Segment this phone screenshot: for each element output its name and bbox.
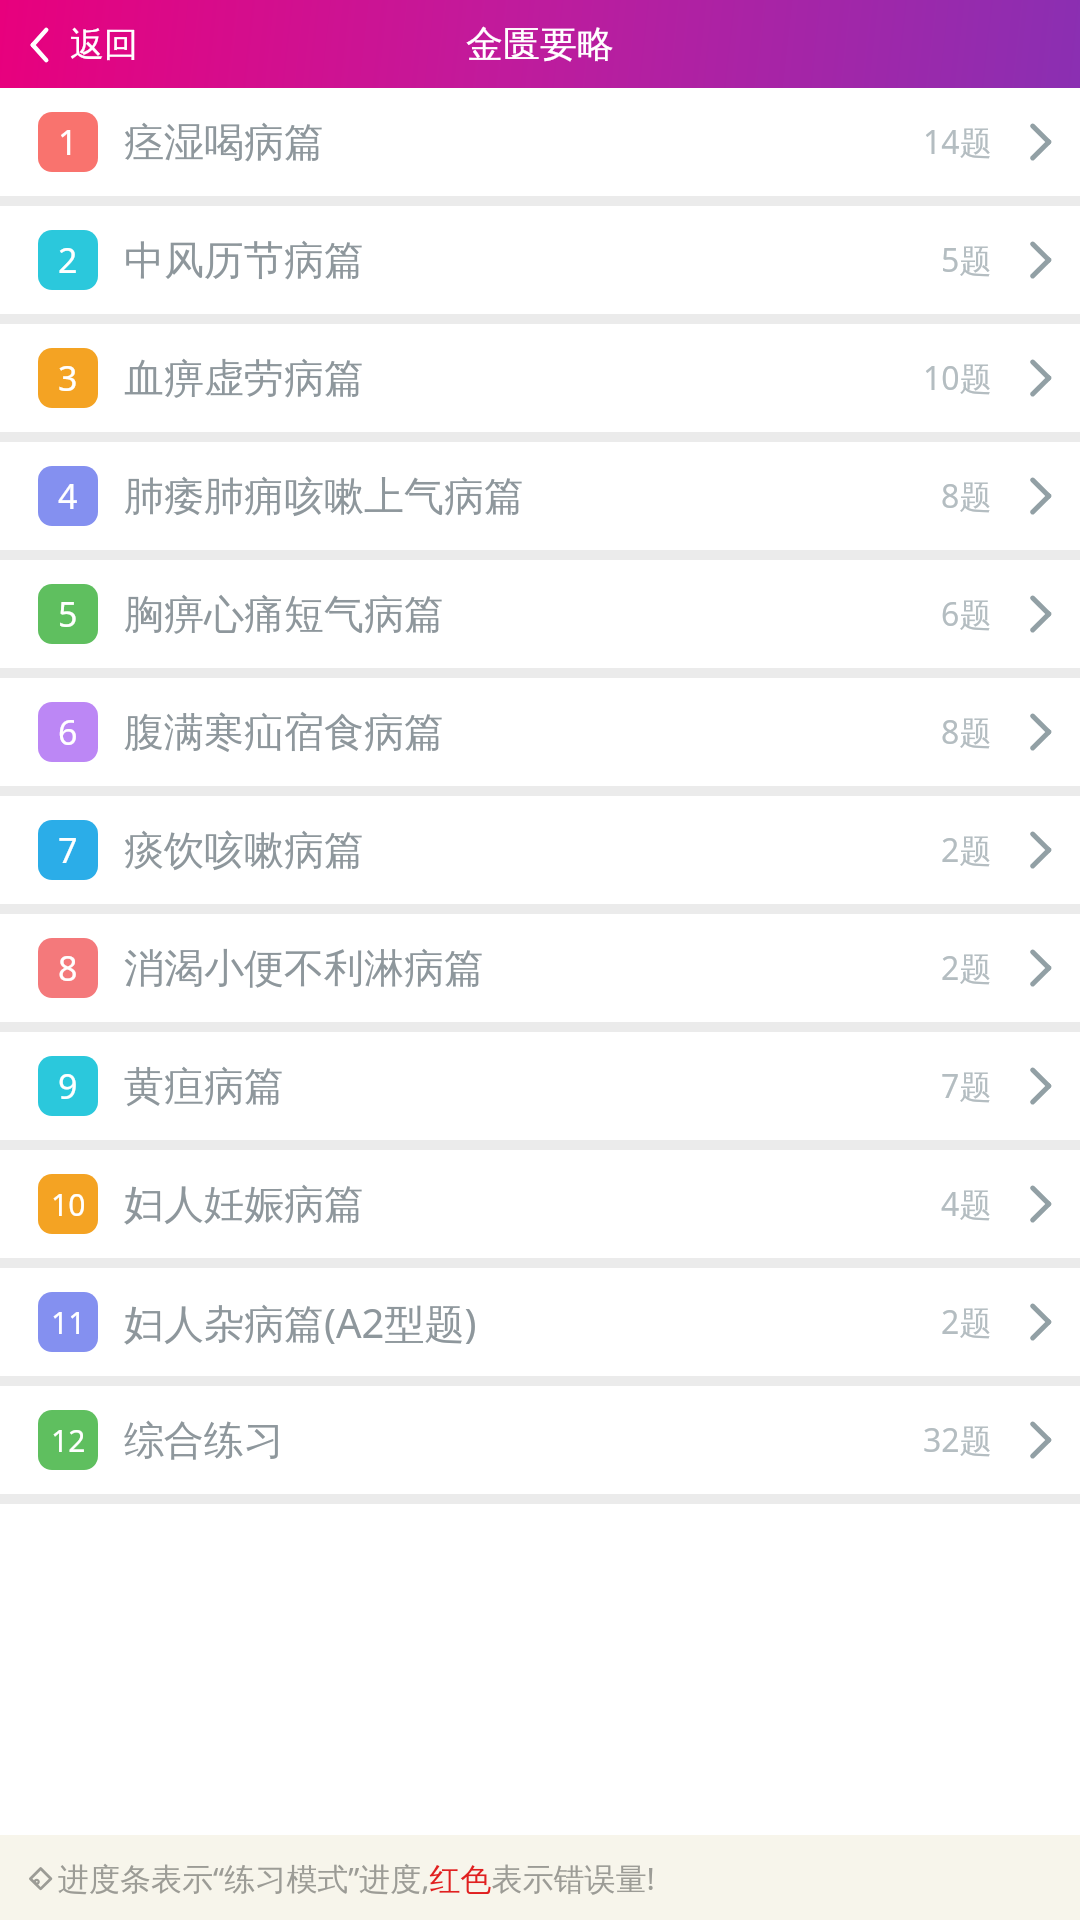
button[interactable]: 3: [0, 324, 1080, 432]
staticText: 14题: [923, 120, 992, 164]
staticText: 6: [58, 709, 78, 755]
staticText: 进度条表示“练习模式”进度,红色表示错误量!: [58, 1857, 655, 1899]
button[interactable]: 8: [0, 914, 1080, 1022]
other: 打开 肺痿肺痈咳嗽上气病篇: [1028, 475, 1054, 517]
staticText: 8题: [941, 710, 992, 754]
staticText: 12: [51, 1420, 86, 1461]
button[interactable]: 5: [0, 560, 1080, 668]
staticText: 8: [58, 945, 78, 991]
other: 打开 黄疸病篇: [1028, 1065, 1054, 1107]
other: 打开 综合练习: [1028, 1419, 1054, 1461]
staticText: 11: [51, 1302, 86, 1343]
staticText: 血痹虚劳病篇: [124, 353, 923, 403]
button[interactable]: 1: [0, 88, 1080, 196]
staticText: 7题: [941, 1064, 992, 1108]
button[interactable]: 2: [0, 206, 1080, 314]
staticText: 6题: [941, 592, 992, 636]
other: 打开 妇人妊娠病篇: [1028, 1183, 1054, 1225]
staticText: 肺痿肺痈咳嗽上气病篇: [124, 471, 941, 521]
staticText: 黄疸病篇: [124, 1061, 941, 1111]
staticText: 32题: [923, 1418, 992, 1462]
staticText: 5题: [941, 238, 992, 282]
staticText: 8题: [941, 474, 992, 518]
staticText: 1: [58, 119, 78, 165]
staticText: 痰饮咳嗽病篇: [124, 825, 941, 875]
other: 打开 痉湿喝病篇: [1028, 121, 1054, 163]
other: 打开 痰饮咳嗽病篇: [1028, 829, 1054, 871]
other: 打开 中风历节病篇: [1028, 239, 1054, 281]
staticText: 10: [51, 1184, 86, 1225]
staticText: 7: [58, 827, 78, 873]
staticText: 妇人杂病篇(A2型题): [124, 1295, 941, 1350]
button[interactable]: 7: [0, 796, 1080, 904]
button[interactable]: 10: [0, 1150, 1080, 1258]
other: 打开 血痹虚劳病篇: [1028, 357, 1054, 399]
staticText: 2题: [941, 1300, 992, 1344]
button[interactable]: 12: [0, 1386, 1080, 1494]
staticText: 消渴小便不利淋病篇: [124, 943, 941, 993]
other: 打开 消渴小便不利淋病篇: [1028, 947, 1054, 989]
button[interactable]: 6: [0, 678, 1080, 786]
staticText: 4题: [941, 1182, 992, 1226]
staticText: 3: [58, 355, 78, 401]
staticText: 2题: [941, 946, 992, 990]
staticText: 中风历节病篇: [124, 235, 941, 285]
staticText: 妇人妊娠病篇: [124, 1179, 941, 1229]
staticText: 胸痹心痛短气病篇: [124, 589, 941, 639]
other: 打开 胸痹心痛短气病篇: [1028, 593, 1054, 635]
staticText: 痉湿喝病篇: [124, 117, 923, 167]
staticText: 10题: [923, 356, 992, 400]
staticText: 金匮要略: [466, 21, 614, 68]
other: 打开 妇人杂病篇(A2型题): [1028, 1301, 1054, 1343]
button[interactable]: 11: [0, 1268, 1080, 1376]
staticText: 9: [58, 1063, 78, 1109]
staticText: 腹满寒疝宿食病篇: [124, 707, 941, 757]
staticText: 4: [58, 473, 78, 519]
staticText: 2: [58, 237, 78, 283]
button[interactable]: 4: [0, 442, 1080, 550]
staticText: 返回: [70, 23, 138, 66]
staticText: 5: [58, 591, 78, 637]
staticText: 综合练习: [124, 1415, 923, 1465]
other: 打开 腹满寒疝宿食病篇: [1028, 711, 1054, 753]
button[interactable]: 9: [0, 1032, 1080, 1140]
staticText: 2题: [941, 828, 992, 872]
button[interactable]: 返回: [0, 11, 160, 78]
